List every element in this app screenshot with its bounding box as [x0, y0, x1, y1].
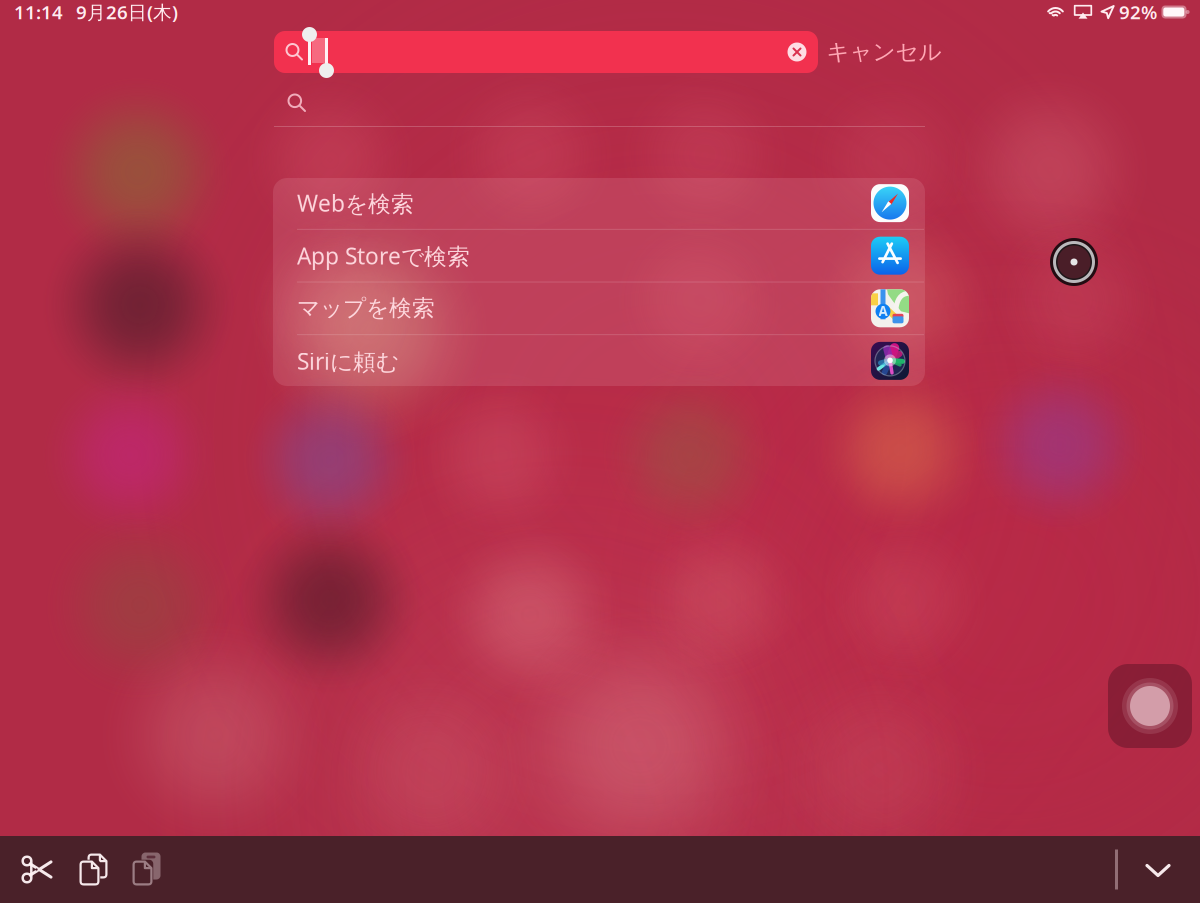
button[interactable]: Clear text: [780, 31, 814, 73]
button[interactable]: AssistiveTouch: [1108, 664, 1192, 748]
button[interactable]: Hide keyboard: [1142, 853, 1174, 885]
staticText: 9月26日(木): [76, 0, 178, 24]
staticText: マップを検索: [297, 294, 435, 322]
button[interactable]: Paste: [130, 851, 162, 887]
staticText: Siriに頼む: [297, 346, 399, 376]
staticText: キャンセル: [826, 38, 941, 66]
button[interactable]: Copy: [77, 851, 109, 887]
staticText: 92%: [1119, 0, 1157, 24]
button[interactable]: Cut: [20, 851, 56, 887]
staticText: App Storeで検索: [297, 241, 470, 271]
button[interactable]: Voice Control: [1050, 238, 1098, 286]
button[interactable]: キャンセル: [824, 31, 944, 73]
button[interactable]: Siriに頼む: [273, 335, 925, 387]
button[interactable]: Webを検索: [273, 177, 925, 229]
staticText: 11:14: [14, 0, 63, 24]
staticText: A: [878, 302, 887, 320]
button[interactable]: App Storeで検索: [273, 230, 925, 281]
staticText: Webを検索: [297, 188, 414, 218]
button[interactable]: マップを検索: [273, 282, 925, 334]
